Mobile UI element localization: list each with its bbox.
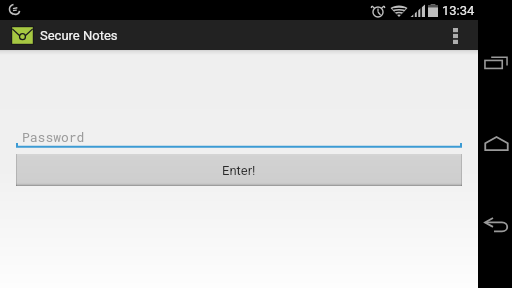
button[interactable]: Enter! [16,154,462,186]
staticText: Secure Notes [40,28,118,43]
button[interactable]: Password [16,124,462,148]
button[interactable]: More options [432,20,478,50]
button[interactable]: Recent apps [478,43,512,83]
staticText: 13:34 [442,3,475,18]
button[interactable]: Home [478,123,512,163]
staticText: Enter! [222,163,256,178]
button[interactable]: Back [478,204,512,244]
staticText: Password [22,128,85,145]
